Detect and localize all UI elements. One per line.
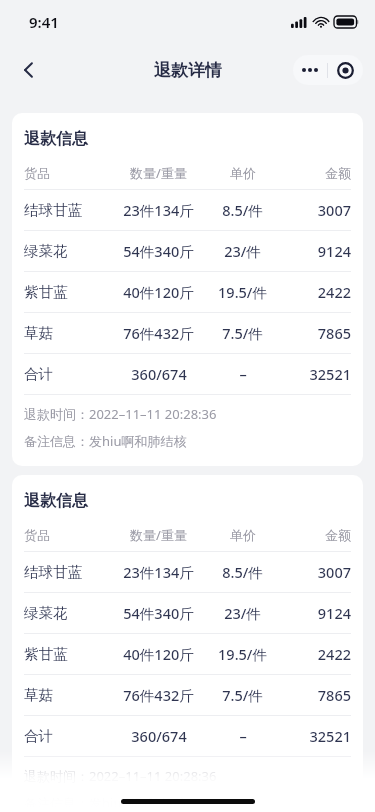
staticText: 23/件 bbox=[224, 603, 261, 623]
staticText: 退款时间：2022–11–11 20:28:36 bbox=[24, 767, 217, 785]
staticText: 7.5/件 bbox=[222, 323, 263, 343]
staticText: 退款信息 bbox=[24, 129, 88, 149]
staticText: – bbox=[239, 726, 247, 746]
staticText: 数量/重量 bbox=[130, 164, 187, 182]
staticText: 40件120斤 bbox=[123, 644, 194, 664]
button[interactable]: More options bbox=[293, 55, 327, 85]
staticText: 2422 bbox=[317, 282, 351, 302]
staticText: 合计 bbox=[24, 727, 53, 745]
staticText: 金额 bbox=[325, 165, 351, 181]
staticText: 绿菜花 bbox=[24, 242, 68, 260]
staticText: 备注信息：发hiu啊和肺结核 bbox=[24, 432, 187, 450]
staticText: 9:41 bbox=[29, 12, 59, 32]
button[interactable]: Back bbox=[10, 52, 46, 88]
staticText: 紫甘蓝 bbox=[24, 645, 68, 663]
staticText: 19.5/件 bbox=[218, 644, 267, 664]
staticText: 备注信息：发hiu啊和肺结核 bbox=[24, 794, 187, 812]
staticText: 结球甘蓝 bbox=[24, 563, 82, 581]
staticText: 紫甘蓝 bbox=[24, 283, 68, 301]
staticText: 360/674 bbox=[131, 726, 187, 746]
staticText: 草菇 bbox=[24, 686, 53, 704]
staticText: 退款详情 bbox=[154, 60, 222, 81]
staticText: 单价 bbox=[230, 527, 256, 543]
staticText: 32521 bbox=[309, 364, 351, 384]
staticText: 360/674 bbox=[131, 364, 187, 384]
staticText: 9124 bbox=[317, 603, 351, 623]
staticText: 绿菜花 bbox=[24, 604, 68, 622]
staticText: 草菇 bbox=[24, 324, 53, 342]
staticText: 数量/重量 bbox=[130, 526, 187, 544]
staticText: 9124 bbox=[317, 241, 351, 261]
staticText: 54件340斤 bbox=[123, 603, 194, 623]
staticText: 8.5/件 bbox=[222, 200, 263, 220]
staticText: 结球甘蓝 bbox=[24, 201, 82, 219]
staticText: 退款时间：2022–11–11 20:28:36 bbox=[24, 405, 217, 423]
staticText: 合计 bbox=[24, 365, 53, 383]
staticText: – bbox=[239, 364, 247, 384]
staticText: 76件432斤 bbox=[123, 685, 194, 705]
staticText: 金额 bbox=[325, 527, 351, 543]
staticText: 19.5/件 bbox=[218, 282, 267, 302]
staticText: 货品 bbox=[24, 527, 50, 543]
staticText: 货品 bbox=[24, 165, 50, 181]
staticText: 40件120斤 bbox=[123, 282, 194, 302]
button[interactable]: 退款信息 bbox=[12, 475, 363, 812]
staticText: 3007 bbox=[317, 562, 351, 582]
button[interactable]: 退款信息 bbox=[12, 113, 363, 466]
staticText: 8.5/件 bbox=[222, 562, 263, 582]
staticText: 23件134斤 bbox=[123, 200, 194, 220]
staticText: 7865 bbox=[317, 685, 351, 705]
staticText: 退款信息 bbox=[24, 491, 88, 511]
staticText: 54件340斤 bbox=[123, 241, 194, 261]
staticText: 23件134斤 bbox=[123, 562, 194, 582]
staticText: 2422 bbox=[317, 644, 351, 664]
staticText: 32521 bbox=[309, 726, 351, 746]
staticText: 7865 bbox=[317, 323, 351, 343]
staticText: 23/件 bbox=[224, 241, 261, 261]
staticText: 76件432斤 bbox=[123, 323, 194, 343]
staticText: 3007 bbox=[317, 200, 351, 220]
button[interactable]: Target bbox=[328, 55, 363, 85]
staticText: 7.5/件 bbox=[222, 685, 263, 705]
staticText: 单价 bbox=[230, 165, 256, 181]
